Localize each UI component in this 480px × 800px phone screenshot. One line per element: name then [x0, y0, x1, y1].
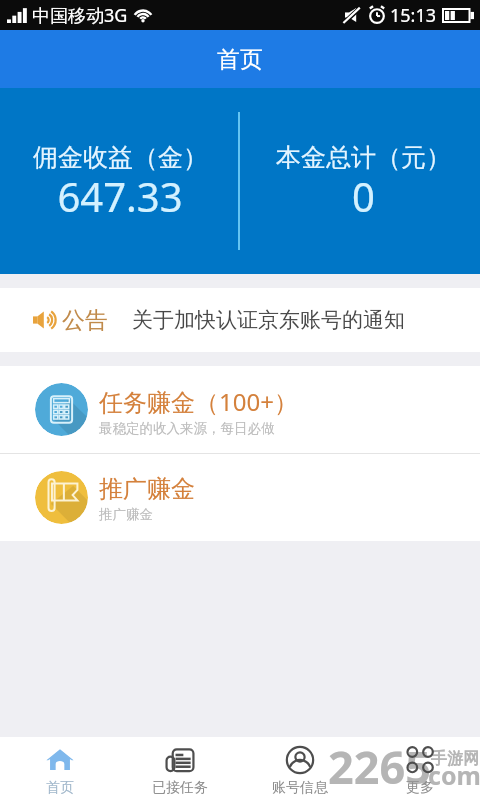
staticText: 647.33 — [57, 169, 183, 223]
button[interactable]: 推广赚金 — [0, 454, 480, 541]
staticText: 首页 — [217, 45, 263, 74]
button[interactable]: 任务赚金（100+） — [0, 366, 480, 453]
staticText: 本金总计（元） — [276, 142, 451, 173]
staticText: 账号信息 — [272, 779, 328, 797]
staticText: 推广赚金 — [99, 506, 153, 523]
button[interactable]: 更多 — [360, 737, 480, 800]
staticText: 更多 — [406, 779, 434, 797]
button[interactable]: 已接任务 — [120, 737, 240, 800]
staticText: 最稳定的收入来源，每日必做 — [99, 420, 275, 437]
staticText: 推广赚金 — [99, 474, 195, 504]
staticText: 公告 — [62, 306, 108, 335]
staticText: 中国移动3G — [32, 3, 128, 28]
staticText: 15:13 — [390, 3, 437, 28]
staticText: 0 — [352, 169, 375, 223]
staticText: 2265 — [328, 736, 431, 797]
button[interactable]: 公告 — [0, 288, 480, 352]
staticText: 任务赚金（100+） — [99, 385, 298, 418]
staticText: 首页 — [46, 779, 74, 797]
staticText: 手游网 — [431, 749, 479, 769]
staticText: 佣金收益（金） — [33, 142, 208, 173]
button[interactable]: 账号信息 — [240, 737, 360, 800]
button[interactable]: 首页 — [0, 737, 120, 800]
staticText: 已接任务 — [152, 779, 208, 797]
staticText: 关于加快认证京东账号的通知 — [132, 307, 405, 333]
staticText: .com — [421, 758, 480, 792]
